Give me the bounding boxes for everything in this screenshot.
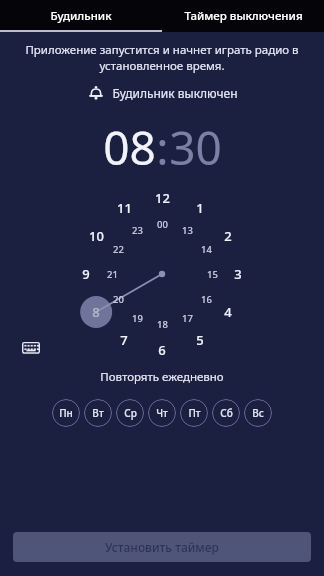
button[interactable]: Keyboard input [20, 337, 42, 359]
button[interactable]: 13 [173, 220, 201, 240]
button[interactable]: Alarm [0, 84, 324, 102]
button[interactable]: 9 [72, 264, 100, 284]
button[interactable]: Пн [52, 399, 80, 427]
button[interactable]: 4 [214, 302, 242, 322]
button[interactable]: 22 [104, 239, 132, 259]
button[interactable]: 14 [192, 239, 220, 259]
button[interactable]: 18 [148, 314, 176, 334]
staticText: 22 [113, 243, 124, 256]
staticText: 2 [224, 227, 232, 245]
button[interactable]: Вт [84, 399, 112, 427]
button[interactable]: 1 [186, 198, 214, 218]
button[interactable]: 7 [110, 330, 138, 350]
button[interactable]: Пт [180, 399, 208, 427]
button[interactable]: Чт [148, 399, 176, 427]
button[interactable]: 30 [169, 116, 222, 179]
staticText: 30 [169, 116, 222, 179]
staticText: Будильник выключен [112, 85, 238, 101]
staticText: 5 [196, 331, 204, 349]
staticText: Вс [252, 406, 264, 420]
button[interactable]: 16 [192, 289, 220, 309]
staticText: 15 [207, 268, 218, 281]
button[interactable]: 23 [123, 220, 151, 240]
button[interactable]: 17 [173, 308, 201, 328]
staticText: Будильник [50, 8, 112, 24]
button[interactable]: Таймер выключения [162, 0, 324, 32]
staticText: 9 [82, 265, 90, 283]
staticText: Пн [59, 406, 73, 420]
staticText: : [156, 116, 169, 179]
staticText: 20 [113, 293, 124, 306]
staticText: Вт [92, 406, 104, 420]
staticText: Установить таймер [105, 539, 219, 555]
staticText: Приложение запустится и начнет играть ра… [22, 42, 302, 74]
button[interactable]: 11 [110, 198, 138, 218]
staticText: 1 [196, 199, 204, 217]
staticText: 08 [103, 116, 156, 179]
staticText: Повторять ежедневно [100, 369, 224, 385]
staticText: Таймер выключения [184, 8, 303, 24]
button[interactable]: Вс [244, 399, 272, 427]
button[interactable]: 2 [214, 226, 242, 246]
button[interactable]: 15 [198, 264, 226, 284]
staticText: Пт [188, 406, 201, 420]
staticText: 21 [107, 268, 118, 281]
staticText: 23 [132, 224, 143, 237]
staticText: 17 [182, 312, 193, 325]
staticText: Сб [220, 406, 233, 420]
staticText: 16 [201, 293, 212, 306]
staticText: 00 [157, 218, 168, 231]
button[interactable]: 00 [148, 214, 176, 234]
other: Alarm [87, 84, 105, 102]
staticText: 6 [158, 341, 166, 359]
button[interactable]: Сб [212, 399, 240, 427]
button[interactable]: 8 [82, 302, 110, 322]
button[interactable]: Установить таймер [13, 532, 311, 562]
button[interactable]: 19 [123, 308, 151, 328]
staticText: 14 [201, 243, 212, 256]
staticText: 3 [234, 265, 242, 283]
staticText: 18 [157, 318, 168, 331]
staticText: Ср [124, 406, 137, 420]
button[interactable]: Ср [116, 399, 144, 427]
button[interactable]: 21 [98, 264, 126, 284]
staticText: 8 [92, 303, 100, 321]
staticText: 13 [182, 224, 193, 237]
staticText: 7 [120, 331, 128, 349]
button[interactable]: 12 [148, 188, 176, 208]
staticText: 4 [224, 303, 232, 321]
button[interactable]: 08 [103, 116, 156, 179]
button[interactable]: 3 [224, 264, 252, 284]
staticText: 11 [117, 199, 132, 217]
staticText: 12 [155, 189, 170, 207]
staticText: 19 [132, 312, 143, 325]
button[interactable]: 10 [82, 226, 110, 246]
button[interactable]: 6 [148, 340, 176, 360]
staticText: 10 [89, 227, 104, 245]
button[interactable]: 5 [186, 330, 214, 350]
button[interactable]: 20 [104, 289, 132, 309]
staticText: Чт [156, 406, 168, 420]
button[interactable]: Будильник [0, 0, 162, 32]
